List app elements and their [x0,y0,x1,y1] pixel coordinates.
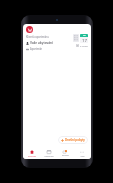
button[interactable]: More [75,150,89,158]
staticText: Klientů apartmánu [26,35,49,39]
staticText: ÚT [83,34,86,37]
button[interactable]: Overview [25,150,39,158]
button[interactable]: Dnešní pobyty [58,136,88,144]
button[interactable]: Klientů apartmánu [26,34,88,51]
staticText: Zprávy [62,154,69,157]
staticText: Více [80,155,85,158]
button[interactable]: Calendar [42,150,56,158]
staticText: 5 osob [80,44,88,47]
staticText: Apartmán [30,47,43,51]
button[interactable]: Messages [58,150,72,157]
staticText: Kalendář [44,155,54,158]
button[interactable]: Date 17 [80,34,88,43]
staticText: Přehled [28,155,36,158]
staticText: Dnešní pobyty [65,138,85,142]
staticText: Vaše ubytování [30,41,53,45]
staticText: 17 [82,37,87,43]
button[interactable]: App logo [26,26,33,33]
